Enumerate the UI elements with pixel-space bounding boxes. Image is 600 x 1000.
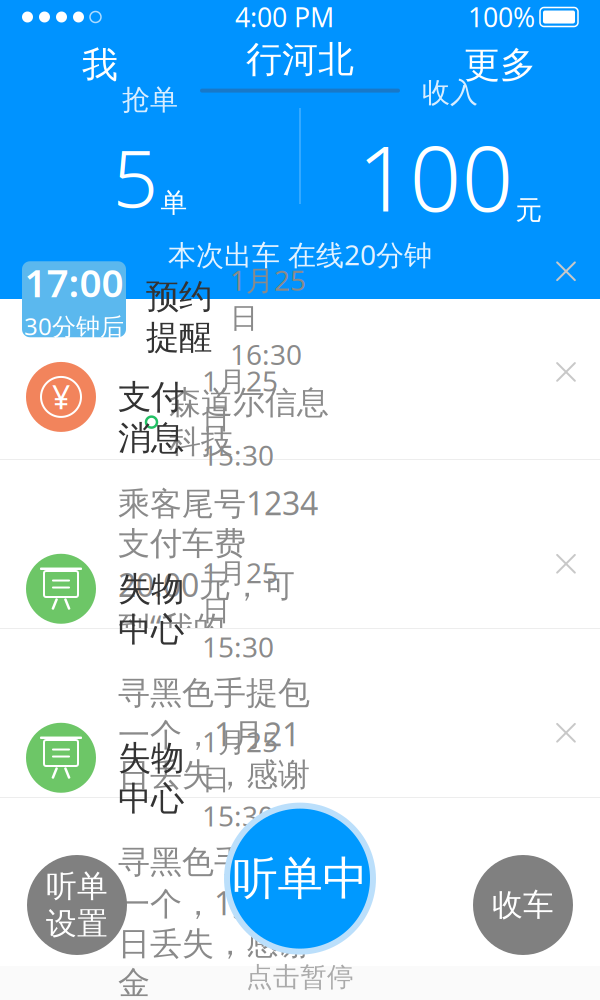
- staticText: 17:00: [24, 257, 123, 308]
- button[interactable]: 关闭: [540, 245, 592, 297]
- staticText: 瑞景公园: [169, 471, 297, 511]
- staticText: 失物中心: [118, 738, 184, 819]
- staticText: 1月25日 15:30: [202, 723, 278, 834]
- staticText: 寻黑色手提包一个，1月21日丢失，感谢金: [118, 673, 310, 834]
- staticText: 5: [112, 123, 158, 229]
- staticText: 1月25日 15:30: [202, 362, 278, 473]
- staticText: 抢单: [122, 83, 178, 117]
- staticText: 失物中心: [118, 569, 184, 650]
- staticText: 元: [515, 194, 542, 226]
- staticText: 4:00 PM: [235, 0, 334, 35]
- staticText: 1月25日 16:30: [230, 261, 306, 373]
- staticText: 行河北: [246, 37, 354, 82]
- staticText: 点击暂停: [246, 961, 354, 993]
- button[interactable]: 关闭: [540, 538, 592, 590]
- staticText: 100: [357, 116, 513, 236]
- staticText: 更多: [464, 43, 536, 87]
- staticText: 设置: [46, 905, 108, 943]
- staticText: 预约提醒: [146, 276, 212, 358]
- button[interactable]: 听单中: [224, 803, 376, 955]
- staticText: 支付消息: [118, 377, 184, 459]
- staticText: 听单中: [232, 851, 367, 906]
- button[interactable]: 关闭: [540, 346, 592, 398]
- button[interactable]: 关闭: [540, 707, 592, 759]
- button[interactable]: 更多: [400, 34, 600, 96]
- staticText: 收入: [422, 76, 478, 110]
- staticText: 收入”中查看。: [118, 656, 257, 738]
- staticText: 50元。: [118, 842, 218, 884]
- staticText: 1月25日 15:30: [202, 554, 278, 665]
- staticText: 我: [82, 43, 118, 87]
- button[interactable]: 听单: [27, 855, 127, 955]
- button[interactable]: 我: [0, 34, 200, 96]
- staticText: 100%: [468, 0, 535, 35]
- staticText: 30分钟后: [24, 310, 124, 342]
- staticText: 听单: [46, 867, 108, 905]
- staticText: 森道尔信息科技: [169, 383, 329, 461]
- staticText: 乘客尾号1234支付车费20.00元，可到“我的: [118, 481, 318, 648]
- staticText: 收车: [492, 886, 554, 924]
- staticText: ¥: [52, 376, 70, 418]
- staticText: 寻黑色手提包一个，1月21日丢失，感谢金: [118, 842, 310, 1000]
- button[interactable]: 收车: [473, 855, 573, 955]
- staticText: 本次出车 在线20分钟: [168, 236, 432, 273]
- staticText: 单: [160, 187, 187, 219]
- button[interactable]: 行河北: [200, 30, 400, 100]
